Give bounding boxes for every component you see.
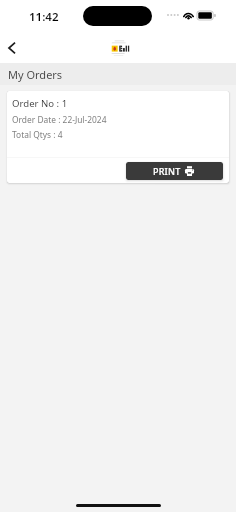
button[interactable]: Back xyxy=(0,36,24,60)
staticText: Order No : 1 xyxy=(12,97,68,110)
staticText: Total Qtys : 4 xyxy=(12,129,63,140)
staticText: My Orders xyxy=(8,67,63,82)
staticText: Order Date : 22-Jul-2024 xyxy=(12,114,107,125)
staticText: 11:42 xyxy=(29,9,59,25)
button[interactable]: PRINT xyxy=(126,162,223,180)
staticText: PRINT xyxy=(153,165,181,177)
button[interactable]: Order No : 1 xyxy=(7,91,229,183)
